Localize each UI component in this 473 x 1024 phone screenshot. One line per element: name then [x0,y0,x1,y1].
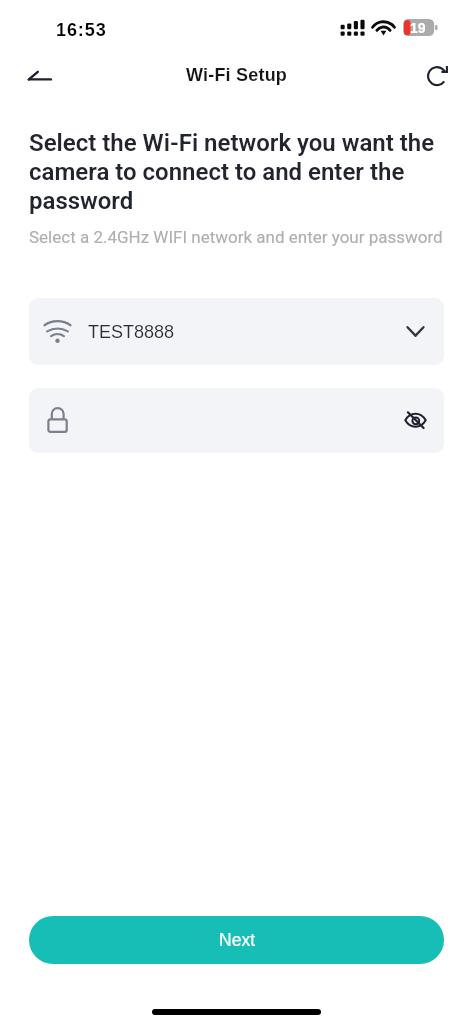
staticText: Next [219,930,255,950]
staticText: Select a 2.4GHz WIFI network and enter y… [29,227,443,247]
button[interactable]: TEST8888 [29,298,444,365]
staticText: TEST8888 [88,322,175,342]
staticText: Select the Wi-Fi network you want the ca… [29,129,453,215]
staticText: 16:53 [56,20,107,40]
button[interactable]: Next [29,916,444,964]
staticText: Wi-Fi Setup [186,65,288,85]
button[interactable]: Password [29,388,444,453]
staticText: 19 [410,20,426,36]
button[interactable]: Refresh [421,54,461,94]
button[interactable]: Show password [400,401,440,441]
button[interactable]: Back [17,57,61,95]
